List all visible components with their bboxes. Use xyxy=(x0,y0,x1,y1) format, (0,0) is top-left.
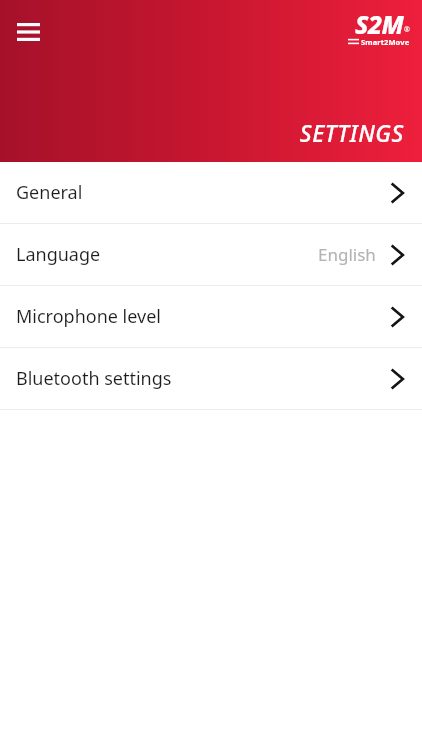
button[interactable]: Open navigation menu xyxy=(6,10,50,54)
staticText: Bluetooth settings xyxy=(16,366,172,391)
button[interactable]: Bluetooth settings xyxy=(0,348,422,409)
staticText: ® xyxy=(404,25,410,35)
staticText: English xyxy=(318,243,376,266)
staticText: Smart2Move xyxy=(361,37,410,47)
button[interactable]: Language xyxy=(0,224,422,285)
button[interactable]: Microphone level xyxy=(0,286,422,347)
staticText: General xyxy=(16,180,83,205)
button[interactable]: General xyxy=(0,162,422,223)
staticText: Microphone level xyxy=(16,304,161,329)
staticText: S2M xyxy=(355,7,404,41)
staticText: SETTINGS xyxy=(299,117,404,148)
staticText: Language xyxy=(16,242,101,267)
